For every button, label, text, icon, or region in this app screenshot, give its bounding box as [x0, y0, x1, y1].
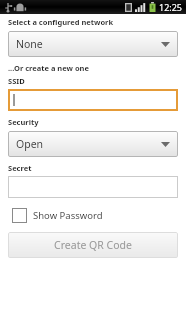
other: USB and debugging active [3, 1, 29, 13]
staticText: Create QR Code [54, 238, 132, 252]
button[interactable]: None [8, 31, 178, 57]
button[interactable]: Show Password [10, 206, 105, 225]
staticText: Secret [8, 163, 32, 173]
staticText: Open [16, 137, 44, 151]
staticText: Security [8, 117, 39, 127]
button[interactable]: Open [8, 131, 178, 157]
button[interactable]: Create QR Code [8, 232, 178, 258]
staticText: 12:25 [159, 1, 183, 13]
staticText: Show Password [33, 209, 103, 222]
button[interactable] [8, 176, 178, 198]
staticText: Select a configured network [8, 17, 114, 27]
staticText: ...Or create a new one [8, 63, 89, 73]
staticText: None [16, 37, 43, 51]
staticText: SSID [8, 76, 25, 86]
button[interactable] [8, 89, 178, 111]
